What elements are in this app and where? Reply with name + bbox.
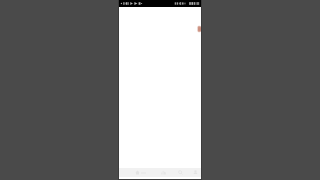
button[interactable]: Profile xyxy=(189,168,201,177)
button[interactable]: Add xyxy=(196,24,201,34)
